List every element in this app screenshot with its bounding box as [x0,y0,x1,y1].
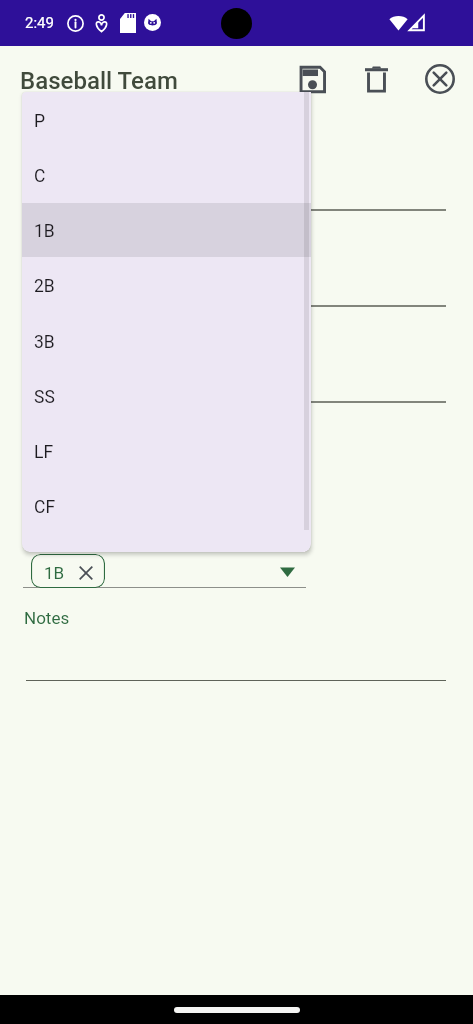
staticText: LF [34,442,54,463]
staticText: Baseball Team [20,67,178,95]
button[interactable]: CF [22,478,311,533]
button[interactable]: Delete [352,55,400,103]
button[interactable]: 1B [22,202,311,257]
staticText: SS [34,387,55,408]
button[interactable]: LF [22,423,311,478]
button[interactable]: 1B [31,554,105,588]
staticText: CF [34,497,56,518]
button[interactable]: 3B [22,313,311,368]
staticText: C [34,166,46,187]
staticText: 3B [34,332,55,353]
staticText: 1B [44,563,65,583]
button[interactable]: P [22,92,311,147]
button[interactable]: C [22,147,311,202]
button[interactable]: Close [416,55,464,103]
button[interactable]: 2B [22,257,311,312]
staticText: 2B [34,276,55,297]
staticText: P [34,111,46,132]
button[interactable]: SS [22,368,311,423]
button[interactable]: Save [288,55,336,103]
staticText: Notes [24,608,70,628]
staticText: 1B [34,221,55,242]
staticText: 2:49 [25,14,54,32]
